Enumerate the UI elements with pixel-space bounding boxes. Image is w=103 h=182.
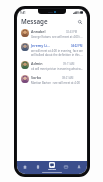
button[interactable]: Calls: [32, 164, 44, 170]
staticText: 08:21 AM: [62, 76, 74, 80]
button[interactable]: Home: [19, 164, 31, 170]
staticText: Annabel: [31, 29, 46, 34]
staticText: 09:11 AM: [63, 62, 75, 66]
staticText: Martian Barton : see will meet at 4:00: [31, 81, 80, 85]
button[interactable]: Profile: [73, 164, 85, 170]
button[interactable]: Annabel: [17, 27, 87, 41]
staticText: Message: [21, 17, 48, 25]
button[interactable]: Message: [46, 161, 58, 172]
button[interactable]: Jeremy Lindsen: [17, 41, 87, 59]
staticText: we will meet at 4:00 in evening, face we…: [31, 49, 83, 57]
staticText: 04:02 PM: [71, 44, 83, 48]
button[interactable]: Sorbo: [17, 73, 87, 87]
staticText: ok will meet prictar in evening what we …: [31, 67, 83, 71]
button[interactable]: Search: [76, 18, 83, 25]
staticText: Jeremy Lindsen: [31, 43, 51, 48]
button[interactable]: Groups: [60, 164, 72, 170]
staticText: George Kotans: see will meet at 4:00 in …: [31, 35, 83, 39]
staticText: Message: [48, 168, 56, 171]
staticText: Admin: [31, 61, 43, 66]
staticText: Sorbo: [31, 75, 42, 80]
button[interactable]: Admin: [17, 59, 87, 73]
staticText: 9:41: [20, 11, 26, 15]
staticText: 02:43 PM: [66, 30, 78, 34]
